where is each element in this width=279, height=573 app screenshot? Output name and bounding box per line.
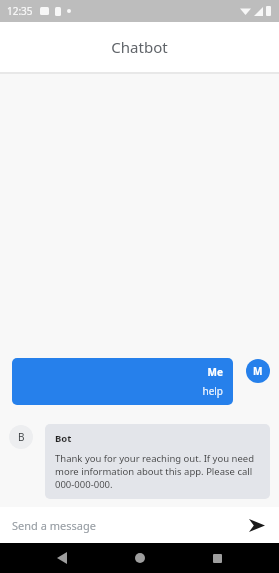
staticText: M	[253, 364, 263, 378]
staticText: Send a message	[12, 518, 96, 533]
staticText: 12:35	[7, 4, 33, 18]
button[interactable]: Me	[12, 358, 233, 405]
staticText: Thank you for your reaching out. If you …	[55, 452, 260, 491]
button[interactable]: Recent apps	[202, 543, 232, 573]
button[interactable]: Home	[125, 543, 155, 573]
button[interactable]: M	[246, 359, 270, 383]
button[interactable]: Back	[47, 543, 77, 573]
button[interactable]: Send	[245, 513, 269, 537]
staticText: help	[202, 384, 223, 398]
staticText: B	[18, 430, 25, 444]
staticText: Bot	[55, 432, 72, 445]
button[interactable]: Bot	[45, 424, 270, 499]
staticText: Me	[207, 365, 223, 379]
button[interactable]: B	[9, 425, 33, 449]
staticText: Chatbot	[111, 37, 168, 57]
